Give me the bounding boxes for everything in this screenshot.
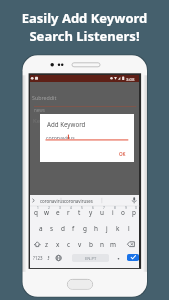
staticText: m — [110, 240, 116, 249]
button[interactable]: k — [112, 221, 123, 235]
staticText: x — [56, 240, 60, 249]
staticText: j — [106, 224, 108, 233]
staticText: w — [44, 208, 50, 217]
staticText: z — [45, 240, 49, 249]
staticText: o — [121, 208, 125, 217]
button[interactable]: t — [74, 205, 85, 219]
staticText: 0 — [135, 206, 137, 210]
staticText: Keywords — [33, 117, 61, 125]
button[interactable]: Enter — [127, 254, 139, 261]
button[interactable]: v — [74, 237, 85, 251]
button[interactable]: b — [85, 237, 96, 251]
staticText: p — [132, 208, 136, 217]
button[interactable]: Backspace — [123, 237, 139, 251]
button[interactable]: x — [52, 237, 63, 251]
button[interactable]: f — [68, 221, 79, 235]
staticText: 4 — [70, 206, 72, 210]
button[interactable]: r — [63, 205, 74, 219]
button[interactable]: u — [96, 205, 107, 219]
staticText: q — [34, 208, 38, 217]
staticText: OK — [119, 151, 126, 157]
button[interactable]: l — [123, 221, 134, 235]
button[interactable]: n — [96, 237, 107, 251]
staticText: 1 — [37, 206, 39, 210]
staticText: Add Keyword — [47, 120, 86, 128]
staticText: s — [50, 224, 54, 233]
staticText: 3:08 — [126, 76, 135, 82]
button[interactable]: h — [90, 221, 101, 235]
button[interactable]: p — [128, 205, 139, 219]
button[interactable]: o — [117, 205, 128, 219]
staticText: 6 — [92, 206, 94, 210]
button[interactable]: e — [52, 205, 63, 219]
button[interactable]: ?123 — [31, 253, 45, 263]
staticText: v — [78, 240, 82, 249]
button[interactable]: j — [101, 221, 112, 235]
staticText: f — [72, 224, 75, 233]
staticText: ?123 — [33, 255, 43, 261]
staticText: i — [112, 208, 114, 217]
button[interactable]: i — [107, 205, 118, 219]
staticText: d — [61, 224, 65, 233]
staticText: k — [116, 224, 120, 233]
staticText: coronavirus — [40, 198, 65, 204]
staticText: u — [100, 208, 104, 217]
button[interactable]: m — [107, 237, 118, 251]
staticText: coronaviruses — [64, 198, 93, 204]
button[interactable]: Space — [72, 254, 109, 262]
staticText: 5 — [81, 206, 83, 210]
button[interactable]: z — [41, 237, 52, 251]
button[interactable]: w — [41, 205, 52, 219]
button[interactable]: a — [35, 221, 46, 235]
button[interactable]: c — [63, 237, 74, 251]
staticText: b — [89, 240, 93, 249]
button[interactable]: OK — [117, 150, 128, 158]
staticText: l — [128, 224, 130, 233]
staticText: 9 — [125, 206, 127, 210]
staticText: Easily Add Keyword Search Listeners! — [0, 9, 169, 45]
staticText: n — [100, 240, 104, 249]
staticText: 3 — [59, 206, 61, 210]
button[interactable]: y — [85, 205, 96, 219]
staticText: coronavirus — [46, 134, 75, 141]
staticText: Subreddit — [32, 94, 57, 101]
staticText: t — [78, 208, 81, 217]
button[interactable]: s — [46, 221, 57, 235]
staticText: EN-PT — [85, 256, 97, 261]
staticText: r — [67, 208, 70, 217]
staticText: g — [83, 224, 87, 233]
button[interactable]: Shift — [30, 237, 46, 251]
button[interactable]: d — [57, 221, 68, 235]
button[interactable]: g — [79, 221, 90, 235]
staticText: 2 — [48, 206, 50, 210]
staticText: 8 — [114, 206, 116, 210]
staticText: h — [94, 224, 98, 233]
staticText: y — [89, 208, 93, 217]
staticText: a — [39, 224, 43, 233]
staticText: 7 — [103, 206, 105, 210]
button[interactable]: q — [30, 205, 41, 219]
staticText: e — [56, 208, 60, 217]
staticText: news — [34, 107, 45, 113]
staticText: c — [67, 240, 71, 249]
